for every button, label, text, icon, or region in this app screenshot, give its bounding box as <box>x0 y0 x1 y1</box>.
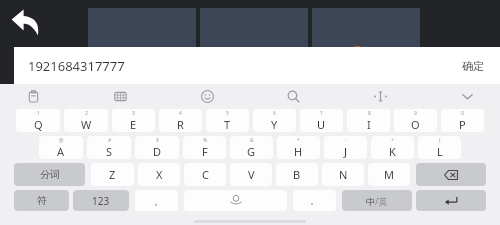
staticText: 1 <box>37 110 40 117</box>
staticText: V <box>248 167 255 182</box>
staticText: I <box>367 117 371 132</box>
staticText: 分词 <box>40 168 60 181</box>
button[interactable]: 中/英 <box>342 190 412 211</box>
button[interactable]: Hide keyboard <box>456 85 478 107</box>
staticText: % <box>203 137 208 144</box>
button[interactable]: 9 <box>394 109 437 132</box>
button[interactable]: C <box>184 163 226 186</box>
button[interactable]: % <box>183 136 226 159</box>
staticText: O <box>411 117 420 132</box>
staticText: + <box>391 137 394 144</box>
button[interactable]: 4 <box>159 109 202 132</box>
button[interactable]: Backspace <box>416 163 486 186</box>
button[interactable]: ( <box>418 136 461 159</box>
button[interactable]: Move cursor <box>369 85 391 107</box>
button[interactable]: Z <box>91 163 134 186</box>
button[interactable]: B <box>276 163 318 186</box>
button[interactable]: Enter <box>416 190 486 211</box>
staticText: H <box>294 144 303 159</box>
staticText: F <box>202 144 208 159</box>
staticText: 7 <box>320 110 323 117</box>
button[interactable]: * <box>277 136 320 159</box>
staticText: 中/英 <box>366 195 388 207</box>
staticText: B <box>293 167 301 182</box>
staticText: 8 <box>368 110 371 117</box>
button[interactable]: 分词 <box>14 163 85 186</box>
staticText: A <box>57 144 65 159</box>
staticText: & <box>250 137 254 144</box>
button[interactable]: Clipboard <box>22 85 44 107</box>
staticText: T <box>224 117 231 132</box>
staticText: L <box>437 144 443 159</box>
button[interactable]: 。 <box>293 190 336 211</box>
staticText: S <box>106 144 113 159</box>
staticText: E <box>130 117 137 132</box>
staticText: N <box>339 167 348 182</box>
button[interactable]: & <box>230 136 273 159</box>
button[interactable]: + <box>371 136 414 159</box>
staticText: G <box>247 144 256 159</box>
button[interactable]: 6 <box>253 109 296 132</box>
staticText: , <box>155 195 158 207</box>
button[interactable]: 123 <box>73 190 129 211</box>
staticText: J <box>344 144 348 159</box>
button[interactable]: N <box>322 163 364 186</box>
staticText: C <box>202 167 209 182</box>
button[interactable]: 7 <box>300 109 343 132</box>
staticText: Q <box>34 117 43 132</box>
staticText: @ <box>59 137 64 144</box>
staticText: 1921684317777 <box>28 57 125 75</box>
staticText: P <box>459 117 466 132</box>
button[interactable]: - <box>324 136 367 159</box>
button[interactable]: 5 <box>206 109 249 132</box>
staticText: - <box>345 137 347 144</box>
button[interactable]: 2 <box>64 109 108 132</box>
button[interactable]: $ <box>135 136 179 159</box>
staticText: 123 <box>92 194 110 208</box>
staticText: Z <box>109 167 116 182</box>
staticText: 5 <box>226 110 229 117</box>
button[interactable]: M <box>368 163 410 186</box>
staticText: D <box>153 144 162 159</box>
staticText: M <box>384 167 394 182</box>
button[interactable]: # <box>87 136 131 159</box>
button[interactable]: 确定 <box>452 53 494 79</box>
button[interactable]: 0 <box>441 109 484 132</box>
button[interactable]: 8 <box>347 109 390 132</box>
button[interactable]: Keyboard layouts <box>109 85 131 107</box>
button[interactable]: Space / Voice input <box>184 190 287 211</box>
staticText: 确定 <box>462 59 484 73</box>
button[interactable]: Search <box>282 85 304 107</box>
button[interactable]: V <box>230 163 272 186</box>
button[interactable]: Emoji <box>196 85 218 107</box>
staticText: # <box>108 137 112 144</box>
button[interactable]: Back <box>6 2 46 42</box>
staticText: $ <box>156 137 159 144</box>
staticText: 3 <box>132 110 135 117</box>
staticText: 2 <box>85 110 88 117</box>
button[interactable]: 符 <box>14 190 69 211</box>
staticText: 。 <box>310 195 319 206</box>
button[interactable]: , <box>135 190 178 211</box>
staticText: * <box>297 137 300 144</box>
staticText: ( <box>439 137 441 144</box>
staticText: 0 <box>461 110 464 117</box>
staticText: W <box>81 117 92 132</box>
staticText: U <box>317 117 326 132</box>
staticText: 符 <box>37 194 47 207</box>
staticText: Y <box>271 117 278 132</box>
staticText: K <box>389 144 396 159</box>
staticText: 6 <box>273 110 276 117</box>
staticText: 9 <box>414 110 417 117</box>
button[interactable]: @ <box>39 136 83 159</box>
button[interactable]: X <box>138 163 180 186</box>
button[interactable]: 1 <box>16 109 60 132</box>
staticText: R <box>177 117 184 132</box>
staticText: X <box>156 167 163 182</box>
staticText: 4 <box>179 110 182 117</box>
button[interactable]: 3 <box>112 109 155 132</box>
